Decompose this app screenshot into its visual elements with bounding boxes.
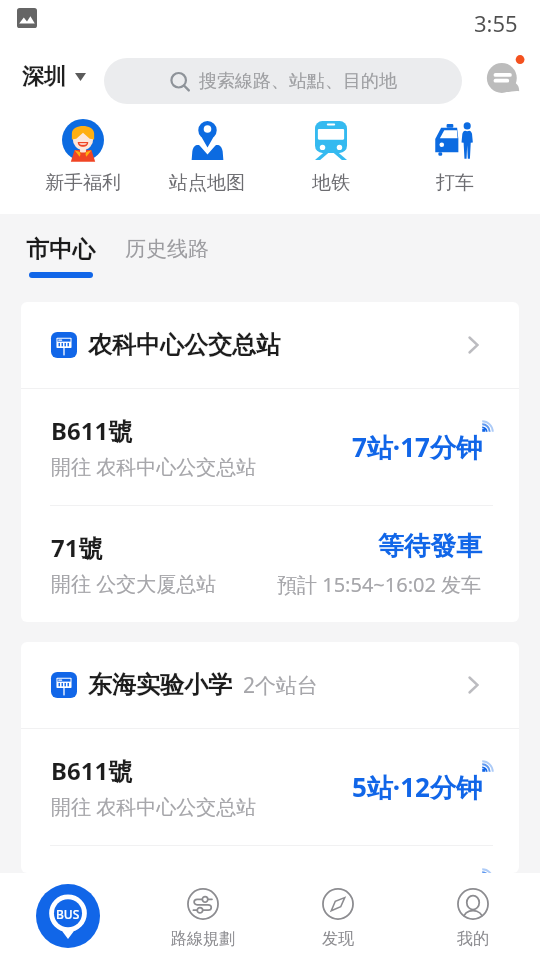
button[interactable]: 公交 (36, 884, 100, 948)
button[interactable]: 深圳 (22, 63, 86, 91)
button[interactable]: 71號 (21, 506, 519, 622)
staticText: 7站·17分钟 (352, 429, 482, 465)
staticText: 农科中心公交总站 (88, 330, 280, 360)
staticText: 站点地图 (169, 171, 245, 195)
button[interactable]: 搜索線路、站點、目的地 (104, 58, 462, 104)
staticText: 市中心 (26, 235, 95, 264)
staticText: 開往 公交大厦总站 (51, 570, 217, 597)
staticText: 地铁 (312, 171, 350, 195)
staticText: B611號 (51, 414, 133, 447)
button[interactable]: 东海实验小学 (21, 642, 519, 728)
staticText: 5站·12分钟 (352, 769, 482, 805)
staticText: 我的 (457, 929, 489, 949)
button[interactable]: 站点地图 (145, 118, 269, 195)
button[interactable] (21, 846, 519, 873)
button[interactable]: B611號 (21, 389, 519, 505)
staticText: 開往 农科中心公交总站 (51, 793, 257, 820)
staticText: B611號 (51, 754, 133, 787)
button[interactable]: 路線規劃 (135, 885, 270, 949)
button[interactable]: 历史线路 (125, 214, 209, 240)
button[interactable]: 农科中心公交总站 (21, 302, 519, 388)
staticText: 開往 农科中心公交总站 (51, 453, 257, 480)
staticText: 預計 15:54~16:02 发车 (277, 571, 482, 598)
staticText: 71號 (51, 531, 103, 564)
staticText: 搜索線路、站點、目的地 (199, 70, 397, 93)
button[interactable]: 市中心 (26, 214, 95, 278)
button[interactable]: 地铁 (269, 118, 393, 195)
button[interactable]: 我的 (405, 885, 540, 949)
staticText: 等待發車 (378, 530, 482, 563)
staticText: 新手福利 (45, 171, 121, 195)
staticText: 历史线路 (125, 236, 209, 262)
staticText: 打车 (436, 171, 474, 195)
button[interactable]: B611號 (21, 729, 519, 845)
staticText: 东海实验小学 (88, 670, 232, 700)
staticText: 3:55 (474, 8, 518, 38)
staticText: 2个站台 (243, 671, 319, 700)
staticText: 发现 (322, 929, 354, 949)
button[interactable]: 消息 (484, 56, 528, 100)
staticText: 深圳 (22, 63, 66, 91)
button[interactable]: 新手福利 (20, 118, 145, 195)
button[interactable]: 打车 (393, 118, 517, 195)
staticText: 路線規劃 (171, 929, 235, 949)
staticText: BUS (56, 906, 80, 922)
button[interactable]: 发现 (270, 885, 405, 949)
